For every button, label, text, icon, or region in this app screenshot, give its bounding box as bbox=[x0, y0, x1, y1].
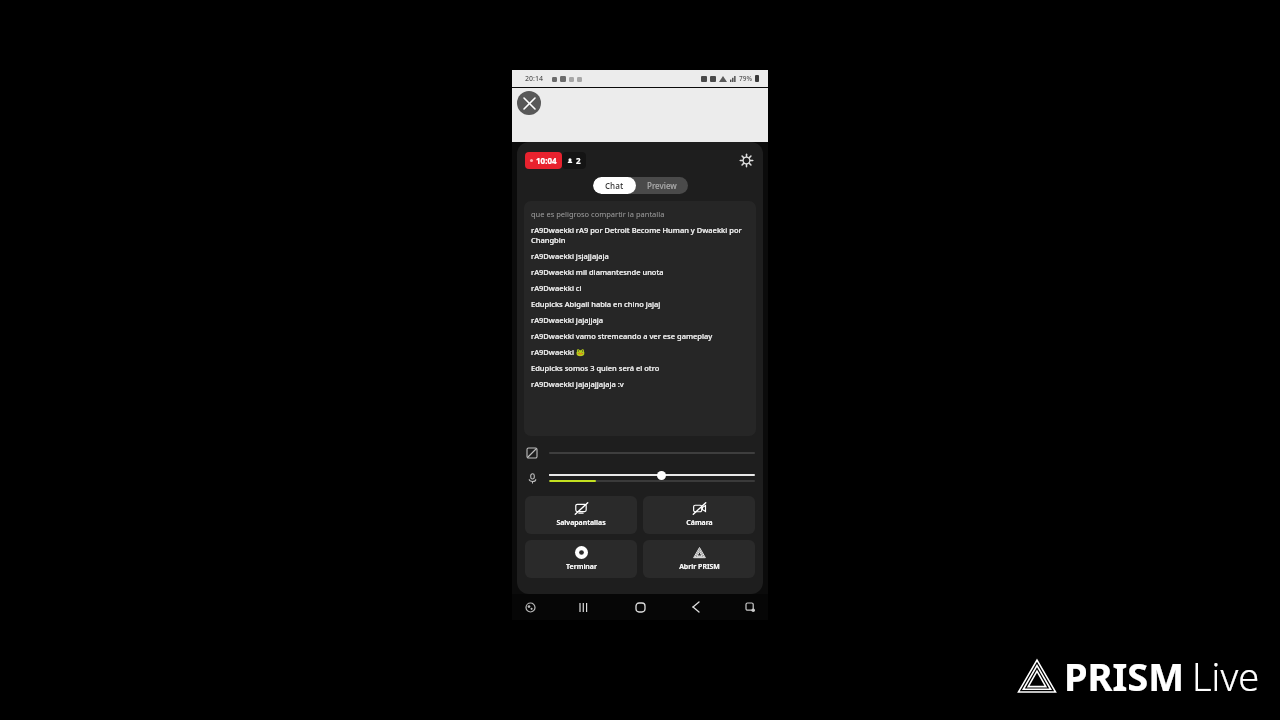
button[interactable]: Close bbox=[517, 91, 541, 115]
button[interactable] bbox=[549, 474, 755, 483]
staticText: rA9Dwaekki 🐸 bbox=[531, 347, 586, 357]
staticText: rA9Dwaekki jsjajjajaja bbox=[531, 251, 609, 261]
staticText: rA9Dwaekki jajajjaja bbox=[531, 315, 604, 325]
staticText: Live bbox=[1192, 650, 1260, 702]
staticText: Abrir PRISM bbox=[679, 562, 720, 572]
staticText: rA9Dwaekki ci bbox=[531, 283, 582, 293]
button[interactable]: Cámara bbox=[643, 496, 755, 534]
button[interactable]: Popup view bbox=[742, 599, 758, 615]
staticText: Terminar bbox=[566, 562, 597, 572]
staticText: Edupicks somos 3 quien será el otro bbox=[531, 363, 660, 373]
staticText: 20:14 bbox=[525, 74, 543, 84]
staticText: Salvapantallas bbox=[556, 518, 606, 528]
staticText: Chat bbox=[605, 180, 624, 191]
staticText: 10:04 bbox=[536, 155, 557, 166]
staticText: rA9Dwaekki mil diamantesnde unota bbox=[531, 267, 664, 277]
button[interactable]: Home bbox=[630, 597, 650, 617]
button[interactable]: Settings bbox=[737, 151, 755, 169]
staticText: que es peligroso compartir la pantalla bbox=[531, 209, 665, 219]
button[interactable]: Preview bbox=[636, 177, 688, 194]
staticText: PRISM bbox=[1064, 650, 1185, 702]
button[interactable]: Recents bbox=[574, 597, 594, 617]
staticText: rA9Dwaekki rA9 por Detroit Become Human … bbox=[531, 225, 749, 245]
button[interactable]: Abrir PRISM bbox=[643, 540, 755, 578]
button[interactable]: Screenshot bbox=[522, 599, 538, 615]
staticText: Preview bbox=[647, 180, 677, 191]
staticText: 79% bbox=[739, 74, 752, 83]
staticText: 2 bbox=[576, 155, 581, 166]
button[interactable]: Chat bbox=[593, 177, 636, 194]
staticText: rA9Dwaekki vamo stremeando a ver ese gam… bbox=[531, 331, 713, 341]
button[interactable]: Salvapantallas bbox=[525, 496, 637, 534]
button[interactable]: Screen off bbox=[525, 446, 539, 460]
staticText: rA9Dwaekki jajajajjajaja :v bbox=[531, 379, 624, 389]
button[interactable]: 10:04 bbox=[525, 152, 562, 169]
button[interactable]: Microphone bbox=[525, 471, 539, 485]
button[interactable]: Back bbox=[686, 597, 706, 617]
staticText: Edupicks Abigail habla en chino jajaj bbox=[531, 299, 661, 309]
button[interactable]: Terminar bbox=[525, 540, 637, 578]
button[interactable]: 2 bbox=[562, 152, 586, 169]
staticText: Cámara bbox=[686, 518, 713, 528]
